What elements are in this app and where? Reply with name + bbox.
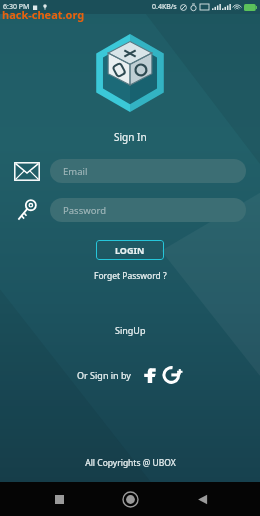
staticText: Forget Password ? xyxy=(94,270,167,282)
button[interactable]: Email xyxy=(12,158,42,184)
button[interactable]: Sign in with Facebook xyxy=(140,366,158,384)
staticText: 0.4KB/s xyxy=(152,2,177,12)
button[interactable]: SingUp xyxy=(109,321,152,339)
button[interactable]: LOGIN xyxy=(96,240,164,260)
button[interactable]: Password xyxy=(50,198,246,222)
button[interactable]: Home xyxy=(117,486,143,512)
button[interactable]: Sign in with Google xyxy=(162,364,184,386)
button[interactable]: Forget Password ? xyxy=(90,268,171,284)
staticText: Email xyxy=(63,165,88,178)
staticText: hack-cheat.org xyxy=(2,7,85,22)
staticText: 6:30 PM xyxy=(3,2,30,12)
staticText: LOGIN xyxy=(115,244,145,256)
staticText: All Copyrights @ UBOX xyxy=(85,457,176,469)
button[interactable]: Recents xyxy=(46,486,72,512)
staticText: SingUp xyxy=(115,324,146,336)
button[interactable]: Password xyxy=(12,197,42,223)
staticText: Or Sign in by xyxy=(77,369,131,381)
staticText: Sign In xyxy=(114,130,147,144)
staticText: Password xyxy=(63,204,106,217)
button[interactable]: Email xyxy=(50,159,246,183)
button[interactable]: Back xyxy=(189,486,215,512)
